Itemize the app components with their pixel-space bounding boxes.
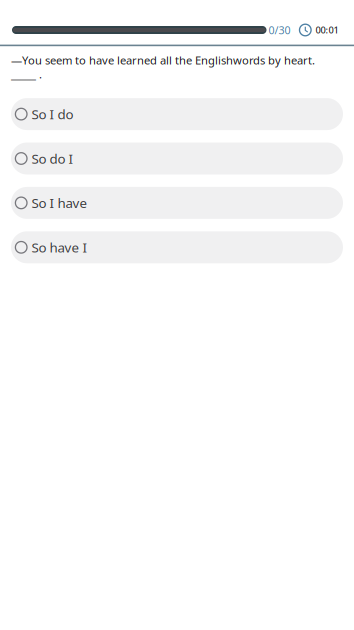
staticText: _____ .	[11, 67, 42, 82]
staticText: So do I	[31, 149, 73, 168]
staticText: —You seem to have learned all the Englis…	[11, 53, 315, 68]
button[interactable]: So I do	[11, 98, 343, 130]
staticText: 0/30	[268, 23, 290, 37]
button[interactable]: So do I	[11, 142, 343, 174]
staticText: 00:01	[316, 24, 339, 36]
staticText: So have I	[31, 238, 87, 256]
staticText: So I have	[31, 194, 87, 212]
button[interactable]: So I have	[11, 187, 343, 219]
button[interactable]: So have I	[11, 231, 343, 263]
staticText: So I do	[31, 105, 73, 123]
